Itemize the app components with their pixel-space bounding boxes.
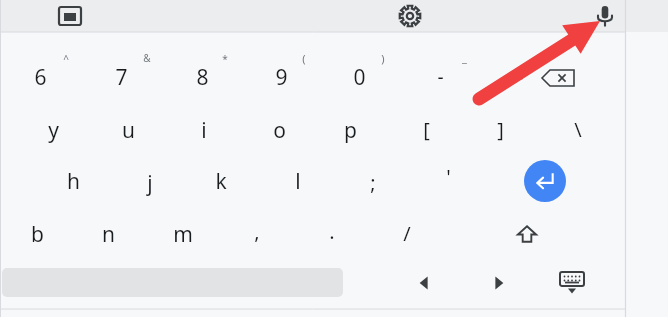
staticText: & (143, 51, 151, 65)
button[interactable]: Move cursor right (479, 266, 519, 300)
button[interactable]: j (120, 163, 180, 203)
staticText: u (122, 116, 135, 145)
button[interactable]: - (410, 57, 470, 97)
staticText: 0 (353, 63, 366, 92)
button[interactable]: o (249, 110, 309, 150)
button[interactable]: 0 (329, 57, 389, 97)
button[interactable]: & (134, 47, 160, 69)
button[interactable]: ( (291, 47, 317, 69)
staticText: 7 (115, 63, 128, 92)
staticText: 9 (275, 63, 288, 92)
staticText: p (344, 116, 357, 145)
button[interactable]: * (212, 48, 238, 70)
button[interactable]: 9 (251, 57, 311, 97)
staticText: ) (381, 51, 385, 66)
staticText: . (329, 218, 335, 245)
button[interactable]: k (191, 161, 251, 201)
staticText: = (513, 64, 524, 90)
button[interactable]: ) (370, 47, 396, 69)
button[interactable]: Settings (395, 2, 425, 30)
button[interactable]: Enter (524, 160, 566, 202)
staticText: 8 (196, 63, 209, 92)
staticText: ' (446, 163, 451, 190)
button[interactable]: 7 (91, 57, 151, 97)
button[interactable]: n (78, 214, 138, 254)
staticText: , (254, 218, 260, 245)
staticText: \ (574, 116, 582, 143)
button[interactable]: Clipboard (50, 2, 90, 30)
staticText: / (403, 220, 411, 247)
staticText: ; (370, 169, 376, 196)
staticText: h (67, 167, 80, 196)
button[interactable]: Shift (508, 216, 546, 252)
button[interactable]: Hide keyboard (552, 264, 592, 300)
staticText: k (215, 167, 227, 196)
button[interactable]: 6 (10, 57, 70, 97)
button[interactable]: b (7, 214, 67, 254)
staticText: i (201, 116, 207, 145)
button[interactable]: y (23, 110, 83, 150)
staticText: ^ (63, 52, 69, 66)
button[interactable]: , (227, 211, 287, 251)
button[interactable]: / (377, 213, 437, 253)
button[interactable]: . (302, 211, 362, 251)
button[interactable]: ] (470, 109, 530, 149)
button[interactable]: u (98, 110, 158, 150)
staticText: l (295, 167, 301, 196)
staticText: n (102, 220, 115, 249)
staticText: 6 (34, 63, 47, 92)
button[interactable]: l (268, 161, 328, 201)
staticText: ( (302, 51, 306, 66)
staticText: j (147, 169, 153, 198)
button[interactable]: ^ (53, 48, 79, 70)
button[interactable]: i (174, 110, 234, 150)
button[interactable]: _ (451, 46, 477, 68)
button[interactable]: m (153, 214, 213, 254)
staticText: _ (462, 50, 467, 65)
staticText: - (437, 64, 444, 90)
button[interactable]: Move cursor left (404, 266, 444, 300)
button[interactable]: + (530, 48, 556, 70)
button[interactable]: p (320, 110, 380, 150)
button[interactable]: ' (418, 156, 478, 196)
button[interactable]: [ (396, 109, 456, 149)
staticText: * (222, 52, 228, 66)
staticText: o (273, 116, 286, 145)
button[interactable]: \ (548, 109, 608, 149)
button[interactable]: 8 (172, 57, 232, 97)
button[interactable]: h (43, 161, 103, 201)
button[interactable]: = (488, 57, 548, 97)
staticText: [ (423, 116, 430, 143)
staticText: y (48, 116, 59, 145)
staticText: b (31, 220, 44, 249)
button[interactable]: ; (343, 162, 403, 202)
button[interactable]: Voice input (590, 2, 620, 30)
staticText: + (540, 52, 547, 67)
staticText: m (173, 220, 193, 249)
button[interactable]: Backspace (532, 60, 584, 96)
staticText: ] (497, 116, 504, 143)
